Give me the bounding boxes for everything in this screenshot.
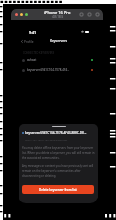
button[interactable]: Home xyxy=(79,12,84,17)
staticText: Keyservers xyxy=(50,39,67,43)
staticText: Profile xyxy=(24,40,34,44)
staticText: 9:41 xyxy=(29,30,37,35)
staticText: You may delete offline keyservers from y… xyxy=(22,146,95,160)
button[interactable]: keyserver.6941C104-7E78-4F4... xyxy=(22,65,93,75)
staticText: Delete keyserver from list xyxy=(39,188,77,192)
staticText: Any messages or content you have previou… xyxy=(22,164,95,178)
staticText: keyserver.6941C104-7E78-4F4... xyxy=(27,68,70,72)
staticText: keyserver.6941C104-7E78-4F43-888C-D8... xyxy=(25,131,87,135)
staticText: CONNECTED KEYSERVERS xyxy=(23,51,55,55)
staticText: iOS 18.5 xyxy=(52,15,64,19)
staticText: ashoat xyxy=(27,58,37,62)
staticText: http://192.168.0.150:3000/keyserver xyxy=(25,138,68,141)
staticText: iPhone 16 Pro xyxy=(44,10,71,15)
button[interactable]: Rotate xyxy=(95,12,100,17)
button[interactable]: ashoat xyxy=(22,55,93,65)
button[interactable]: Profile xyxy=(21,39,34,44)
button[interactable]: Screenshot xyxy=(87,12,92,17)
button[interactable]: Delete keyserver from list xyxy=(22,185,94,194)
